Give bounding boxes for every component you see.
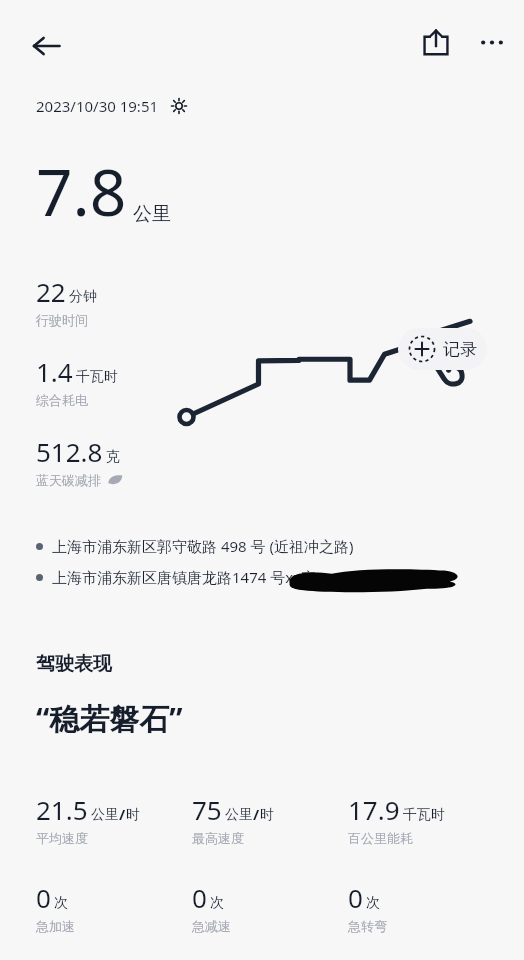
staticText: 2023/10/30 19:51 (36, 96, 159, 116)
staticText: 时 (126, 806, 140, 824)
staticText: 行驶时间 (36, 312, 88, 328)
staticText: / (119, 804, 126, 824)
staticText: 急减速 (192, 918, 231, 934)
staticText: 22 (36, 274, 66, 309)
staticText: 综合耗电 (36, 392, 88, 408)
staticText: 急转弯 (348, 918, 387, 934)
staticText: 百公里能耗 (348, 830, 413, 846)
staticText: 0 (36, 880, 51, 915)
staticText: 0 (192, 880, 207, 915)
staticText: 急加速 (36, 918, 75, 934)
staticText: 0 (348, 880, 363, 915)
staticText: 上海市浦东新区唐镇唐龙路1474 号xx室 (52, 567, 317, 587)
staticText: 千瓦时 (403, 806, 445, 824)
staticText: 记录 (443, 339, 477, 360)
staticText: 千瓦时 (76, 368, 118, 386)
staticText: 75 (192, 792, 222, 827)
staticText: 17.9 (348, 792, 400, 827)
button[interactable]: Share (410, 16, 462, 68)
button[interactable]: More options (466, 16, 518, 68)
staticText: 1.4 (36, 354, 73, 389)
staticText: 公里 (133, 202, 171, 226)
staticText: 克 (106, 448, 120, 466)
button[interactable]: 记录 (398, 328, 487, 370)
staticText: 时 (260, 806, 274, 824)
button[interactable]: Back (18, 18, 74, 74)
staticText: 分钟 (69, 288, 97, 306)
staticText: 7.8 (36, 148, 127, 235)
staticText: 上海市浦东新区郭守敬路 498 号 (近祖冲之路) (52, 536, 354, 556)
staticText: 次 (210, 894, 224, 912)
staticText: 公里 (91, 806, 119, 824)
staticText: 驾驶表现 (36, 652, 112, 676)
staticText: 公里 (225, 806, 253, 824)
staticText: 次 (54, 894, 68, 912)
staticText: 次 (366, 894, 380, 912)
staticText: 最高速度 (192, 830, 244, 846)
staticText: “稳若磐石” (36, 698, 183, 739)
staticText: 512.8 (36, 434, 103, 469)
staticText: 蓝天碳减排 (36, 472, 101, 488)
staticText: / (253, 804, 260, 824)
staticText: 21.5 (36, 792, 88, 827)
staticText: 平均速度 (36, 830, 88, 846)
